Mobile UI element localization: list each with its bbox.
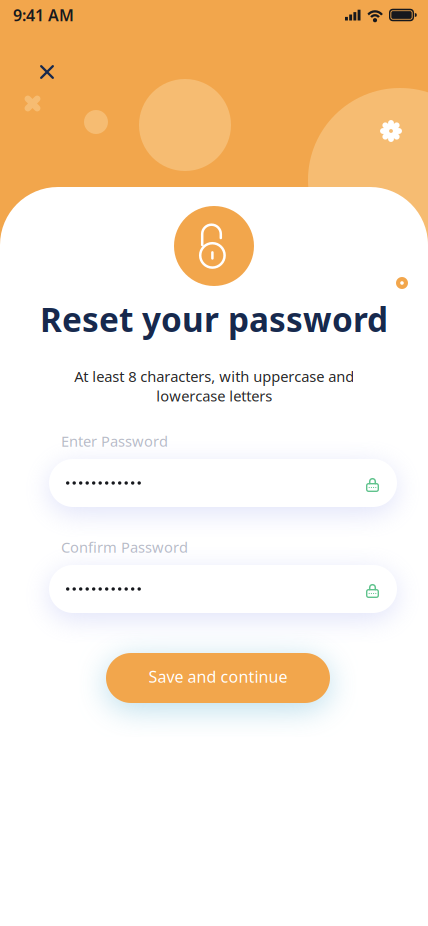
button[interactable]: Settings bbox=[369, 109, 413, 153]
staticText: Save and continue bbox=[148, 666, 287, 687]
button[interactable]: Close bbox=[25, 50, 69, 94]
staticText: Confirm Password bbox=[61, 537, 188, 557]
staticText: 9:41 AM bbox=[13, 4, 74, 26]
staticText: At least 8 characters, with uppercase an… bbox=[74, 366, 354, 405]
button[interactable]: Save and continue bbox=[106, 653, 330, 703]
staticText: Enter Password bbox=[61, 431, 168, 451]
staticText: Reset your password bbox=[40, 297, 388, 341]
